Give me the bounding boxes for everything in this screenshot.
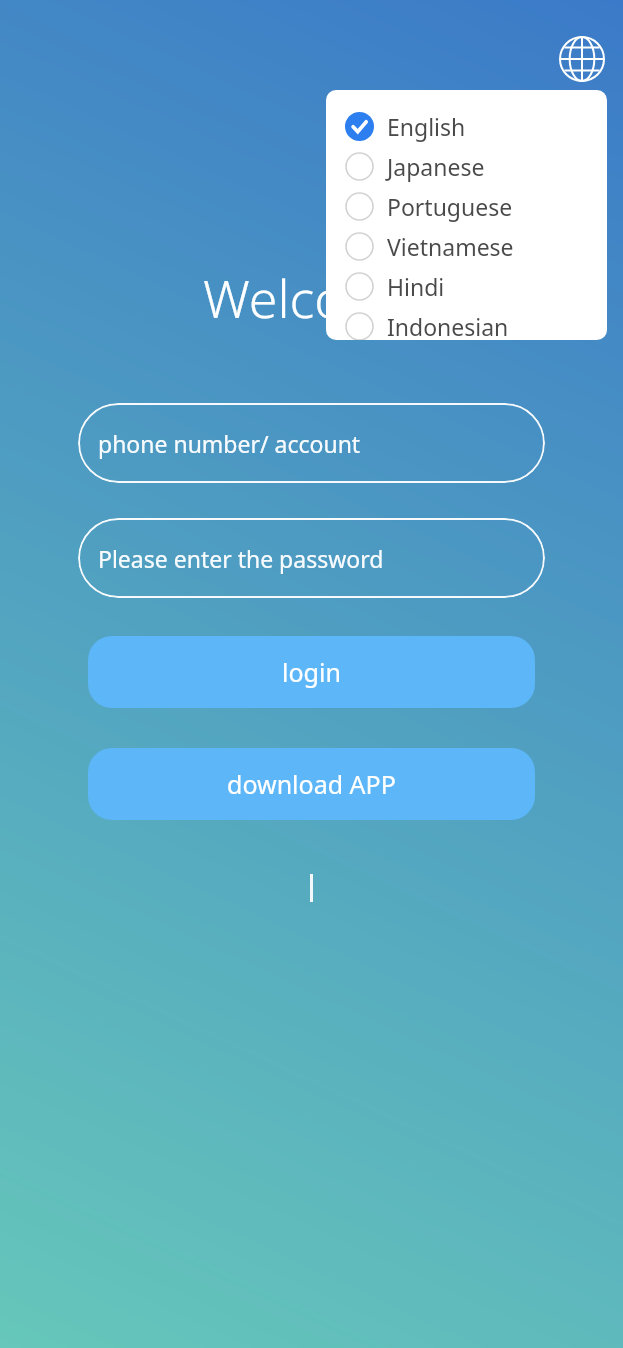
button[interactable]: Change language	[556, 33, 608, 85]
staticText: phone number/ account	[98, 428, 361, 459]
button[interactable]: Vietnamese	[326, 226, 607, 266]
staticText: Japanese	[387, 151, 485, 182]
button[interactable]: Indonesian	[326, 306, 607, 340]
staticText: Vietnamese	[387, 231, 514, 262]
staticText: Hindi	[387, 271, 445, 302]
button[interactable]: Portuguese	[326, 186, 607, 226]
staticText: Indonesian	[387, 311, 509, 340]
staticText: English	[387, 111, 466, 142]
staticText: Please enter the password	[98, 543, 384, 574]
button[interactable]: Please enter the password	[78, 518, 545, 598]
button[interactable]: phone number/ account	[78, 403, 545, 483]
button[interactable]: download APP	[88, 748, 535, 820]
staticText: download APP	[227, 767, 396, 801]
staticText: Portuguese	[387, 191, 513, 222]
staticText: login	[282, 655, 341, 689]
button[interactable]: login	[88, 636, 535, 708]
button[interactable]: Japanese	[326, 146, 607, 186]
button[interactable]: English	[326, 106, 607, 146]
button[interactable]: Hindi	[326, 266, 607, 306]
staticText: Welcome	[0, 262, 623, 333]
